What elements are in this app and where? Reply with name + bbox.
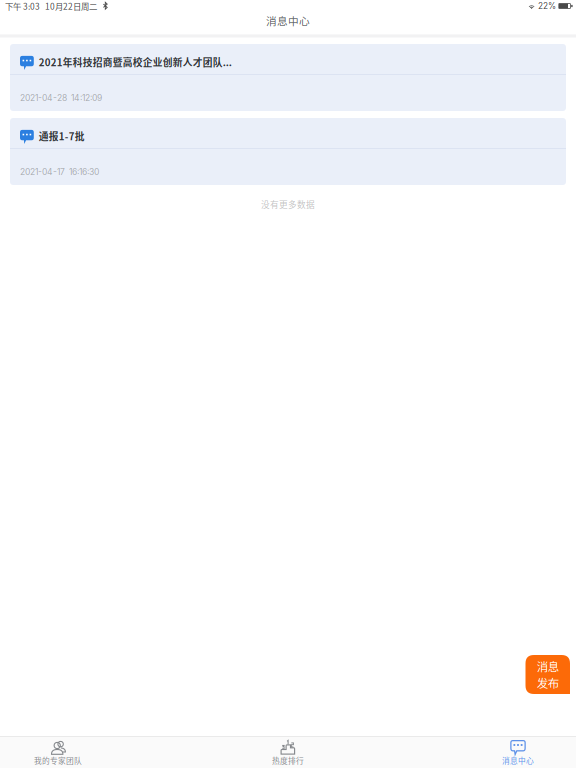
button[interactable]: 消息	[525, 655, 570, 694]
staticText: 下午 3:03	[5, 0, 40, 12]
staticText: 我的专家团队	[34, 755, 82, 766]
staticText: 22%	[538, 1, 556, 11]
staticText: 10月22日周二	[45, 0, 97, 12]
button[interactable]: 热度排行	[230, 737, 346, 768]
staticText: 2021年科技招商暨高校企业创新人才团队...	[39, 55, 232, 69]
staticText: 通报1-7批	[39, 129, 85, 143]
staticText: 热度排行	[272, 755, 304, 766]
button[interactable]: 2021年科技招商暨高校企业创新人才团队...	[10, 44, 566, 111]
staticText: 没有更多数据	[261, 198, 315, 210]
staticText: 2021-04-28 14:12:09	[20, 93, 102, 103]
button[interactable]: 我的专家团队	[0, 737, 116, 768]
staticText: 消息中心	[502, 755, 534, 766]
staticText: 消息中心	[266, 13, 310, 28]
staticText: 消息	[537, 658, 559, 674]
button[interactable]: 通报1-7批	[10, 118, 566, 185]
staticText: 发布	[537, 674, 559, 691]
staticText: 2021-04-17 16:16:30	[20, 167, 99, 177]
button[interactable]: 消息中心	[460, 737, 576, 768]
